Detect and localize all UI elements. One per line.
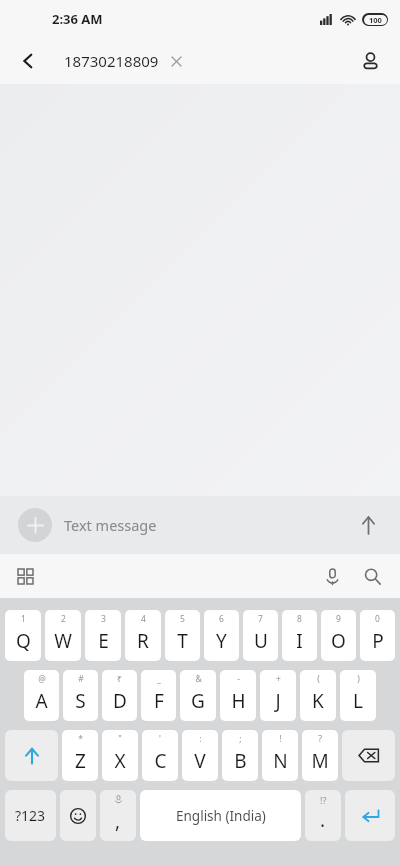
staticText: - xyxy=(237,673,240,685)
button[interactable]: !? xyxy=(305,790,341,841)
staticText: # xyxy=(78,673,84,685)
button[interactable]: English (India) xyxy=(140,790,301,841)
button[interactable]: Backspace xyxy=(342,730,395,781)
staticText: ' xyxy=(159,733,161,745)
button[interactable]: 4 xyxy=(125,610,161,661)
staticText: Q xyxy=(16,628,31,654)
button[interactable]: 9 xyxy=(321,610,356,661)
button[interactable]: ) xyxy=(340,670,376,721)
button[interactable]: Contact details xyxy=(350,41,390,81)
staticText: Z xyxy=(75,748,86,774)
staticText: C xyxy=(154,748,167,774)
button[interactable]: ' xyxy=(142,730,178,781)
staticText: 9 xyxy=(336,613,341,625)
button[interactable]: ; xyxy=(222,730,258,781)
staticText: O xyxy=(331,628,346,654)
button[interactable]: 0 xyxy=(360,610,395,661)
staticText: W xyxy=(54,628,72,654)
staticText: F xyxy=(154,688,164,714)
button[interactable]: ( xyxy=(300,670,336,721)
button[interactable]: Enter xyxy=(345,790,395,841)
staticText: !? xyxy=(320,794,327,806)
button[interactable]: @ xyxy=(24,670,59,721)
staticText: 7 xyxy=(258,613,263,625)
button[interactable]: 1 xyxy=(5,610,41,661)
staticText: 8 xyxy=(297,613,302,625)
staticText: T xyxy=(177,628,188,654)
staticText: 100 xyxy=(369,15,382,25)
staticText: P xyxy=(372,628,384,654)
button[interactable]: - xyxy=(220,670,256,721)
staticText: M xyxy=(311,748,329,774)
button[interactable]: Voice input xyxy=(312,556,352,596)
staticText: V xyxy=(194,748,206,774)
button[interactable]: Search xyxy=(352,556,392,596)
staticText: K xyxy=(312,688,324,714)
staticText: U xyxy=(254,628,268,654)
staticText: " xyxy=(118,733,122,745)
button[interactable]: Send xyxy=(348,505,388,545)
staticText: 18730218809 xyxy=(64,51,159,71)
staticText: J xyxy=(275,688,281,714)
button[interactable]: # xyxy=(63,670,98,721)
button[interactable]: 3 xyxy=(85,610,121,661)
staticText: Y xyxy=(216,628,227,654)
staticText: 3 xyxy=(101,613,106,625)
staticText: , xyxy=(115,808,121,834)
button[interactable]: _ xyxy=(141,670,176,721)
button[interactable]: * xyxy=(62,730,98,781)
staticText: ; xyxy=(239,733,242,745)
button[interactable]: 6 xyxy=(204,610,239,661)
staticText: 2:36 AM xyxy=(52,10,103,28)
staticText: D xyxy=(113,688,127,714)
button[interactable]: Shift xyxy=(5,730,58,781)
button[interactable]: ?123 xyxy=(5,790,56,841)
button[interactable]: Text message xyxy=(64,507,348,543)
button[interactable]: " xyxy=(102,730,138,781)
staticText: 2 xyxy=(61,613,66,625)
button[interactable]: ! xyxy=(262,730,298,781)
button[interactable]: & xyxy=(180,670,216,721)
button[interactable]: , xyxy=(100,790,136,841)
staticText: Text message xyxy=(64,515,157,535)
staticText: L xyxy=(353,688,363,714)
staticText: 4 xyxy=(141,613,146,625)
staticText: B xyxy=(234,748,247,774)
staticText: * xyxy=(78,733,83,745)
staticText: ! xyxy=(279,733,282,745)
staticText: English (India) xyxy=(176,807,266,825)
staticText: . xyxy=(320,807,326,833)
button[interactable]: Keyboard layouts xyxy=(6,557,44,595)
staticText: : xyxy=(199,733,202,745)
button[interactable]: 7 xyxy=(243,610,278,661)
staticText: ₹ xyxy=(117,673,122,685)
button[interactable]: : xyxy=(182,730,218,781)
staticText: R xyxy=(137,628,149,654)
staticText: E xyxy=(98,628,109,654)
staticText: S xyxy=(75,688,86,714)
staticText: 1 xyxy=(21,613,26,625)
staticText: @ xyxy=(38,673,46,685)
staticText: 0 xyxy=(375,613,380,625)
button[interactable]: ₹ xyxy=(102,670,137,721)
button[interactable]: Back xyxy=(8,41,48,81)
staticText: ) xyxy=(357,673,360,685)
staticText: A xyxy=(35,688,48,714)
staticText: 5 xyxy=(180,613,185,625)
staticText: ? xyxy=(318,733,322,745)
button[interactable]: 8 xyxy=(282,610,317,661)
staticText: H xyxy=(231,688,246,714)
button[interactable]: 5 xyxy=(165,610,200,661)
staticText: _ xyxy=(157,673,161,685)
button[interactable]: Emoji xyxy=(60,790,96,841)
staticText: + xyxy=(276,673,281,685)
staticText: ?123 xyxy=(15,806,46,825)
button[interactable]: + xyxy=(260,670,296,721)
button[interactable]: 2 xyxy=(45,610,81,661)
button[interactable]: Clear xyxy=(165,50,187,72)
button[interactable]: ? xyxy=(302,730,338,781)
button[interactable]: Add attachment xyxy=(18,508,52,542)
staticText: & xyxy=(195,673,202,685)
staticText: X xyxy=(114,748,126,774)
staticText: G xyxy=(191,688,205,714)
